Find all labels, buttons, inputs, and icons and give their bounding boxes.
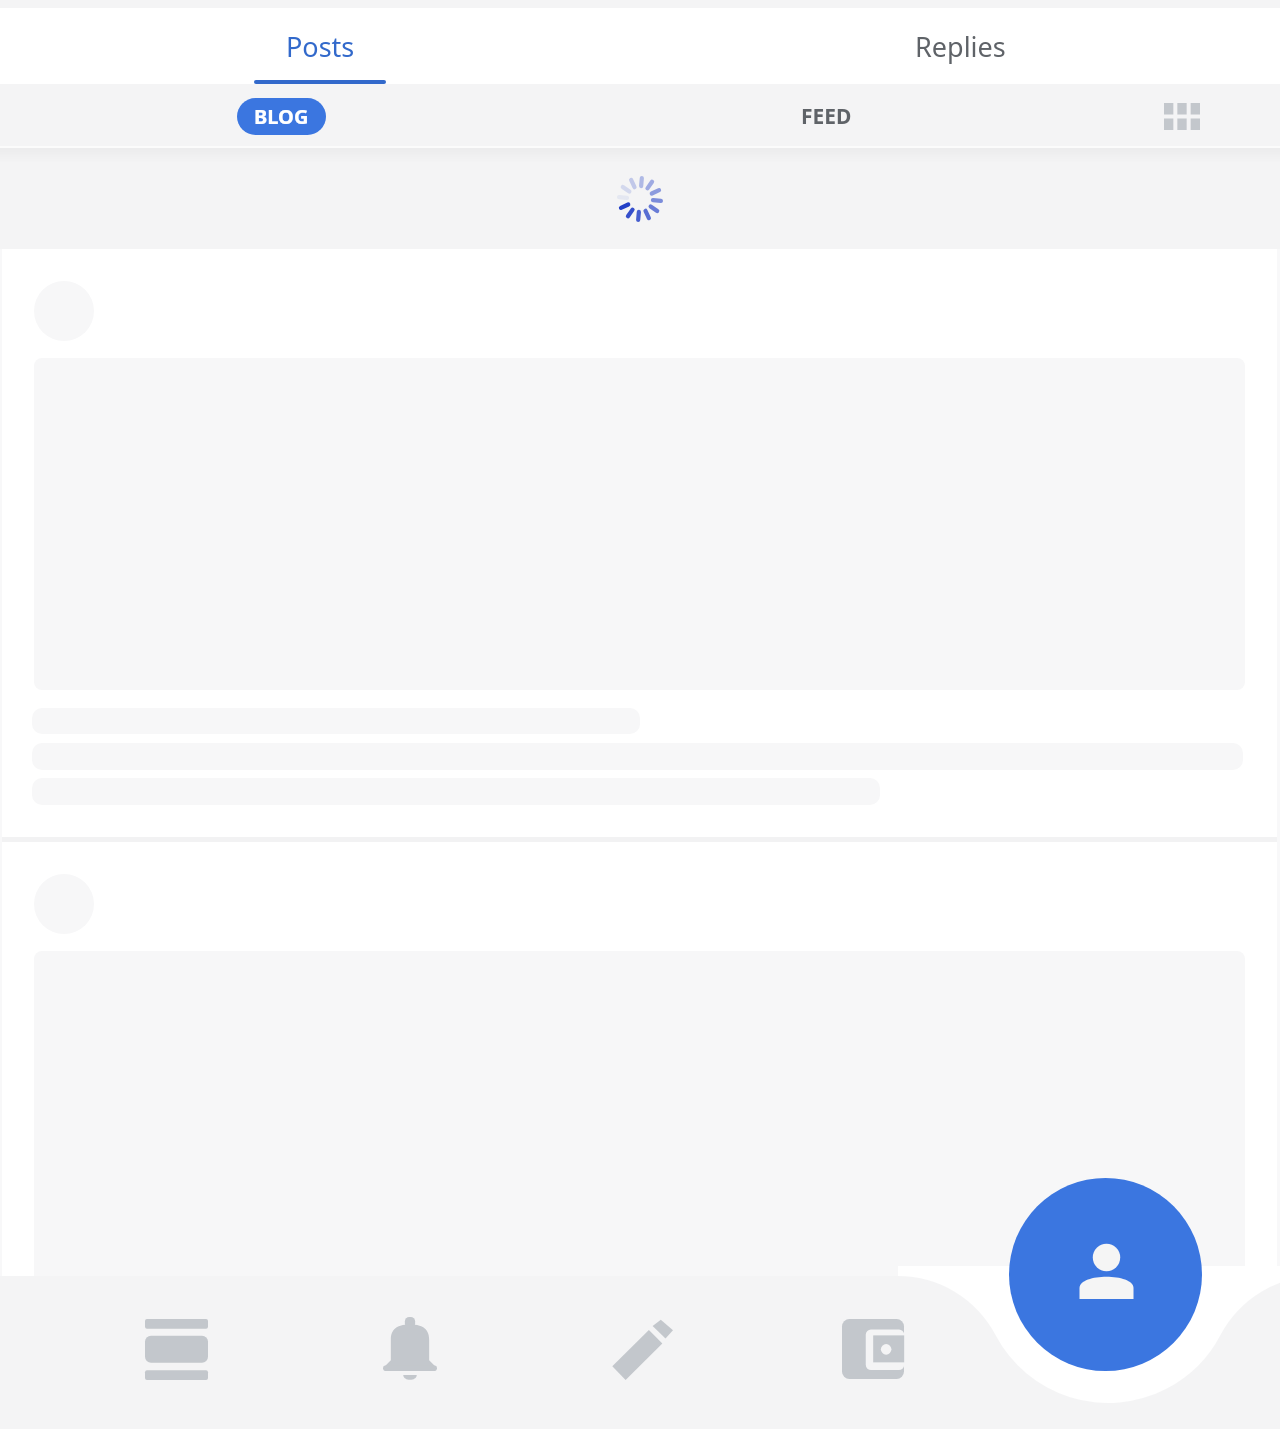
button[interactable]: FEED: [740, 84, 912, 148]
button[interactable]: Posts: [0, 8, 640, 84]
button[interactable]: Wallet: [815, 1291, 931, 1407]
staticText: BLOG: [254, 103, 309, 130]
button[interactable]: Compose: [584, 1291, 700, 1407]
staticText: Replies: [915, 28, 1006, 65]
button[interactable]: Replies: [640, 8, 1280, 84]
button[interactable]: Feed: [118, 1291, 234, 1407]
button[interactable]: Profile: [1009, 1178, 1202, 1371]
button[interactable]: BLOG: [237, 98, 326, 135]
button[interactable]: Notifications: [352, 1291, 468, 1407]
staticText: Posts: [286, 28, 355, 65]
staticText: FEED: [801, 102, 852, 131]
button[interactable]: Grid view: [1130, 84, 1234, 148]
